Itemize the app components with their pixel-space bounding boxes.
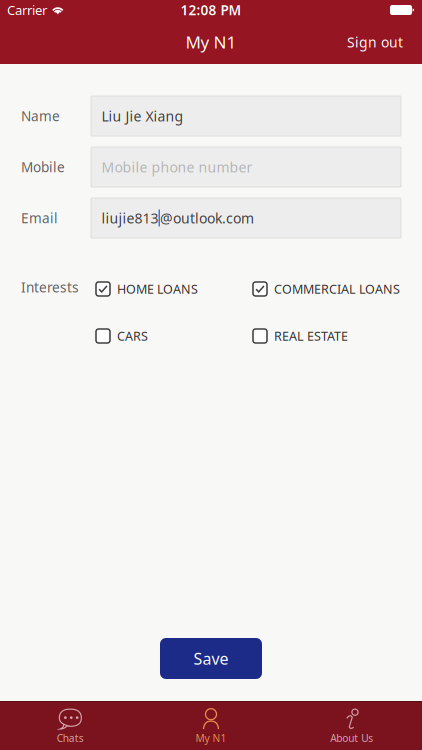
button[interactable]: REAL ESTATE [253, 325, 401, 347]
button[interactable]: HOME LOANS [96, 278, 253, 300]
staticText: @outlook.com [160, 208, 254, 228]
staticText: HOME LOANS [117, 280, 198, 298]
staticText: Chats [57, 731, 84, 745]
button[interactable]: About Us [281, 701, 422, 750]
button[interactable]: COMMERCIAL LOANS [253, 278, 401, 300]
staticText: Email [21, 209, 58, 227]
staticText: COMMERCIAL LOANS [274, 280, 400, 298]
button[interactable]: Chats [0, 701, 141, 750]
staticText: REAL ESTATE [274, 327, 348, 345]
staticText: Name [21, 107, 60, 125]
button[interactable]: My N1 [141, 701, 281, 750]
staticText: Interests [21, 278, 79, 296]
staticText: Sign out [347, 33, 403, 51]
staticText: liujie813 [101, 208, 158, 228]
staticText: My N1 [185, 30, 236, 54]
button[interactable]: Save [160, 638, 262, 679]
staticText: Liu Jie Xiang [101, 106, 183, 126]
button[interactable]: Sign out [337, 23, 413, 61]
staticText: Mobile [21, 158, 65, 176]
staticText: Mobile phone number [101, 157, 252, 177]
staticText: My N1 [195, 731, 226, 745]
staticText: About Us [330, 731, 373, 745]
button[interactable]: CARS [96, 325, 253, 347]
staticText: Save [193, 648, 228, 669]
staticText: CARS [117, 327, 148, 345]
staticText: 12:08 PM [180, 1, 241, 19]
staticText: Carrier [7, 1, 47, 19]
